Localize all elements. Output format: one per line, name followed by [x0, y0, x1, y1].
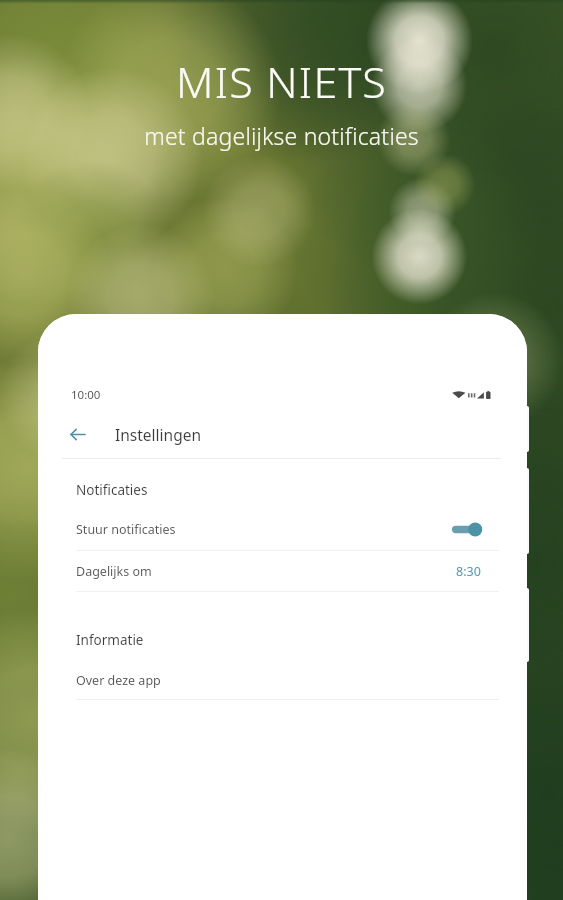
staticText: met dagelijkse notificaties: [0, 120, 563, 151]
button[interactable]: Dagelijks om: [38, 551, 527, 591]
button[interactable]: Stuur notificaties: [38, 515, 527, 543]
staticText: 10:00: [71, 387, 101, 403]
staticText: Instellingen: [115, 424, 202, 445]
button[interactable]: Terug: [60, 417, 94, 451]
staticText: Stuur notificaties: [76, 521, 176, 538]
staticText: Notificaties: [76, 481, 148, 499]
button[interactable]: Over deze app: [38, 666, 527, 694]
staticText: Informatie: [76, 631, 144, 649]
staticText: 8:30: [456, 563, 481, 580]
staticText: MIS NIETS: [0, 52, 563, 111]
staticText: Dagelijks om: [76, 563, 152, 580]
staticText: Over deze app: [76, 672, 161, 689]
